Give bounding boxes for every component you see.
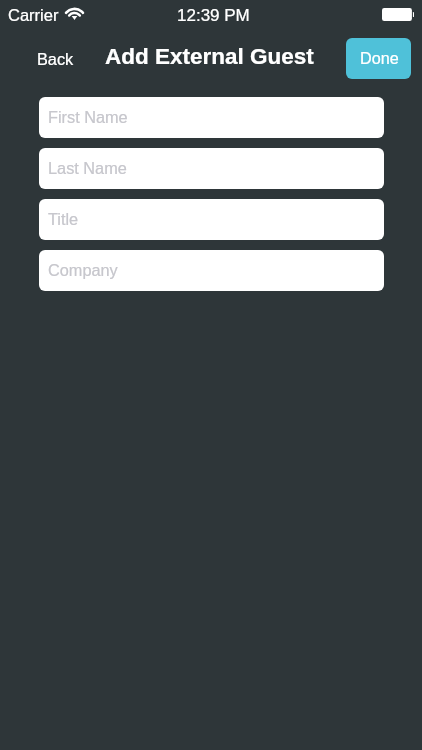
staticText: Title (48, 210, 79, 228)
other: Wi-Fi (66, 7, 83, 20)
button[interactable]: Title (39, 199, 384, 240)
staticText: Carrier (8, 6, 59, 24)
staticText: Last Name (48, 159, 127, 177)
button[interactable]: Done (346, 38, 411, 79)
staticText: Done (360, 49, 399, 67)
staticText: 12:39 PM (177, 6, 250, 25)
button[interactable]: Last Name (39, 148, 384, 189)
button[interactable]: Company (39, 250, 384, 291)
other: Battery full (382, 8, 414, 21)
staticText: Back (37, 50, 74, 68)
button[interactable]: First Name (39, 97, 384, 138)
button[interactable]: Back (23, 42, 88, 76)
staticText: First Name (48, 108, 128, 126)
staticText: Company (48, 261, 118, 279)
staticText: Add External Guest (105, 44, 314, 69)
